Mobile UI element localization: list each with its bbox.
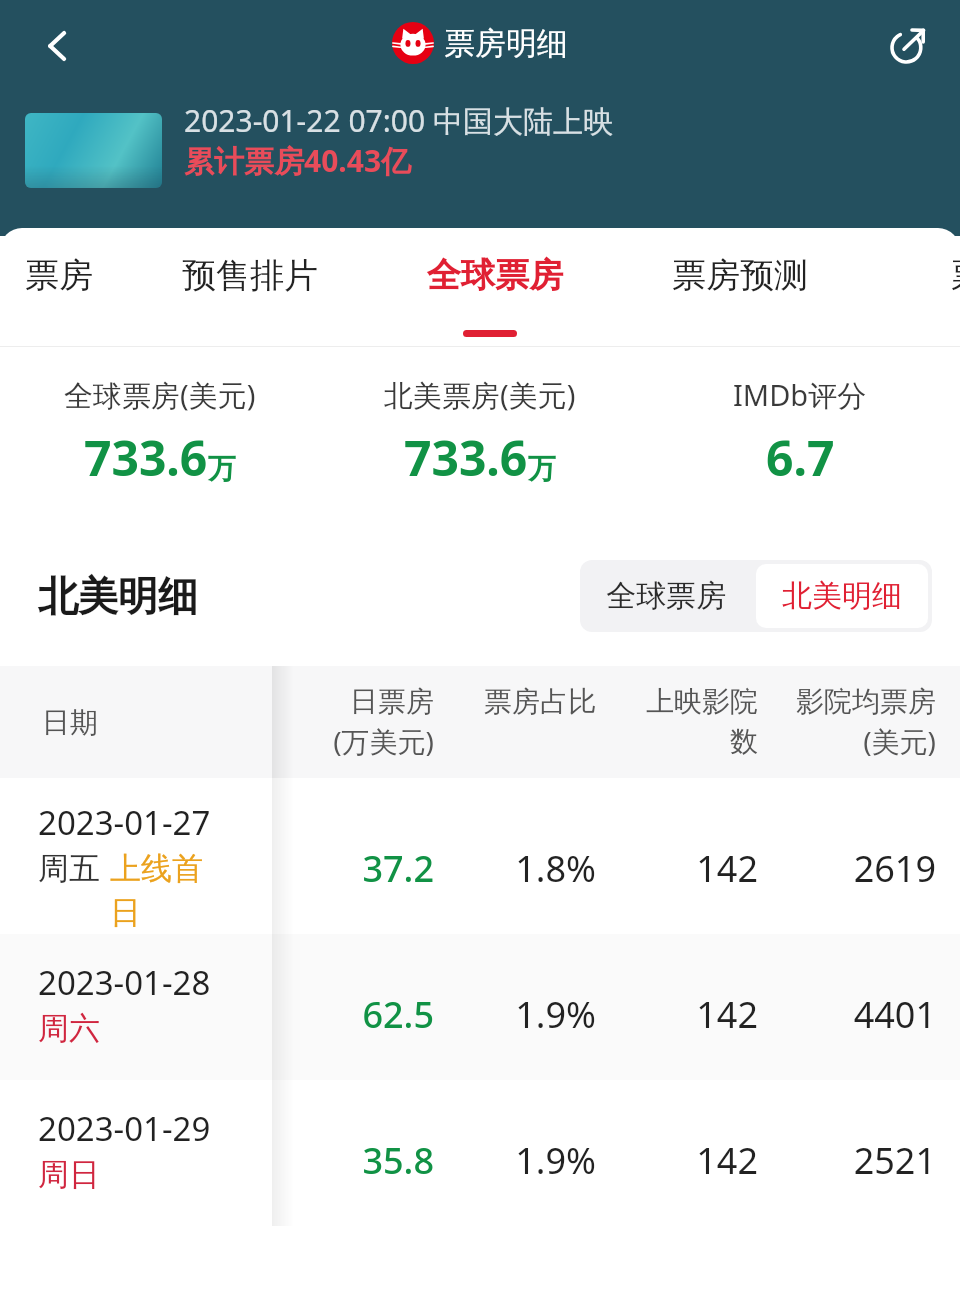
button[interactable]: 票房 xyxy=(0,228,154,346)
button[interactable]: 2023-01-28 xyxy=(0,934,960,1080)
staticText: 全球票房(美元) xyxy=(64,375,256,415)
staticText: 周五 xyxy=(38,849,100,888)
button[interactable]: 票房预测 xyxy=(645,228,835,346)
staticText: 票房 xyxy=(951,254,960,297)
staticText: 日期 xyxy=(42,705,98,740)
button[interactable]: 票房 xyxy=(890,228,960,346)
staticText: 日票房 (万美元) xyxy=(272,684,434,761)
staticText: 累计票房40.43亿 xyxy=(184,140,412,181)
staticText: 预售排片 xyxy=(182,254,318,297)
staticText: 万 xyxy=(528,451,556,486)
staticText: 733.6 xyxy=(404,425,528,490)
staticText: 影院均票房 (美元) xyxy=(758,684,936,761)
staticText: 2619 xyxy=(758,844,936,893)
button[interactable]: Share xyxy=(870,8,946,84)
staticText: 全球票房 xyxy=(427,254,563,297)
staticText: 142 xyxy=(596,1136,758,1185)
staticText: 周六 xyxy=(38,1009,100,1048)
staticText: 733.6 xyxy=(84,425,208,490)
staticText: 票房明细 xyxy=(444,24,568,63)
button[interactable]: Movie poster xyxy=(25,113,162,188)
staticText: 1.9% xyxy=(434,990,596,1039)
staticText: 35.8 xyxy=(272,1136,434,1185)
button[interactable]: Back xyxy=(20,8,96,84)
button[interactable]: 预售排片 xyxy=(155,228,345,346)
staticText: 全球票房 xyxy=(606,577,726,615)
staticText: 2023-01-29 xyxy=(38,1106,211,1151)
staticText: 142 xyxy=(596,844,758,893)
staticText: 2023-01-28 xyxy=(38,960,211,1005)
staticText: 2023-01-27 xyxy=(38,800,211,845)
staticText: 票房占比 xyxy=(434,684,596,719)
staticText: 4401 xyxy=(758,990,936,1039)
staticText: 北美明细 xyxy=(782,577,902,615)
staticText: 票房 xyxy=(25,254,93,297)
staticText: 万 xyxy=(208,451,236,486)
button[interactable]: 北美明细 xyxy=(782,564,902,628)
button[interactable]: 2023-01-29 xyxy=(0,1080,960,1226)
button[interactable]: 全球票房 xyxy=(400,228,590,346)
staticText: IMDb评分 xyxy=(733,375,867,415)
staticText: 上线首日 xyxy=(110,849,230,932)
staticText: 周日 xyxy=(38,1155,100,1194)
staticText: 6.7 xyxy=(766,425,835,490)
staticText: 142 xyxy=(596,990,758,1039)
staticText: 62.5 xyxy=(272,990,434,1039)
staticText: 1.8% xyxy=(434,844,596,893)
staticText: 1.9% xyxy=(434,1136,596,1185)
staticText: 2521 xyxy=(758,1136,936,1185)
staticText: 上映影院 数 xyxy=(596,684,758,759)
staticText: 37.2 xyxy=(272,844,434,893)
staticText: 北美票房(美元) xyxy=(384,375,576,415)
button[interactable]: 2023-01-27 xyxy=(0,778,960,934)
staticText: 2023-01-22 07:00 中国大陆上映 xyxy=(184,100,613,141)
button[interactable]: 全球票房 xyxy=(606,560,726,632)
staticText: 北美明细 xyxy=(38,571,198,621)
staticText: 票房预测 xyxy=(672,254,808,297)
